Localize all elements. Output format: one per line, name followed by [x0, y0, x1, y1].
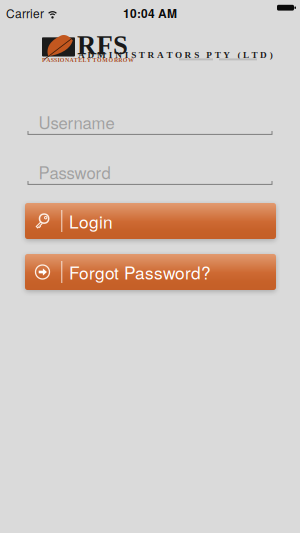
staticText: F — [96, 31, 112, 60]
button[interactable]: Username — [25, 100, 275, 140]
staticText: A — [46, 57, 50, 63]
staticText: ( — [237, 50, 240, 60]
staticText: S — [113, 31, 128, 60]
button[interactable]: Login — [25, 203, 276, 239]
button[interactable]: Forgot Password? — [25, 254, 276, 290]
staticText — [233, 50, 235, 60]
staticText: Carrier — [6, 4, 44, 22]
staticText: S — [51, 57, 54, 63]
staticText: O — [175, 50, 182, 60]
staticText: Y — [223, 50, 230, 60]
staticText: T — [215, 50, 221, 60]
staticText: T — [166, 50, 172, 60]
staticText: D — [260, 50, 267, 60]
staticText: T — [93, 57, 97, 63]
staticText: O — [109, 57, 114, 63]
staticText: T — [252, 50, 258, 60]
staticText: ) — [270, 50, 273, 60]
staticText: Forgot Password? — [69, 260, 211, 284]
staticText: R — [147, 50, 154, 60]
staticText: S — [131, 50, 136, 60]
staticText: P — [206, 50, 212, 60]
staticText: W — [128, 57, 134, 63]
staticText: A — [78, 50, 85, 60]
staticText: 10:04 AM — [123, 4, 177, 22]
staticText: I — [57, 57, 59, 63]
button[interactable]: Password — [25, 150, 275, 190]
staticText: P — [42, 57, 46, 63]
staticText: O — [97, 57, 102, 63]
staticText: R — [77, 31, 96, 60]
staticText: T — [74, 57, 78, 63]
staticText: Username — [38, 110, 114, 134]
staticText: Login — [69, 209, 113, 233]
staticText: A — [69, 57, 73, 63]
staticText: O — [60, 57, 65, 63]
staticText: N — [65, 57, 69, 63]
staticText: A — [157, 50, 164, 60]
staticText: L — [243, 50, 249, 60]
staticText: T — [139, 50, 145, 60]
staticText: M — [97, 50, 106, 60]
staticText: L — [82, 57, 86, 63]
staticText: S — [194, 50, 199, 60]
staticText: R — [185, 50, 192, 60]
staticText — [202, 50, 204, 60]
staticText: M — [102, 57, 108, 63]
staticText: O — [123, 57, 128, 63]
staticText: S — [54, 57, 57, 63]
staticText: I — [125, 50, 129, 60]
staticText: R — [118, 57, 122, 63]
staticText: D — [87, 50, 94, 60]
staticText: Y — [87, 57, 91, 63]
staticText: I — [109, 50, 113, 60]
staticText — [91, 57, 92, 63]
staticText: N — [115, 50, 122, 60]
staticText: R — [114, 57, 118, 63]
staticText: E — [78, 57, 82, 63]
staticText: Password — [38, 160, 110, 184]
